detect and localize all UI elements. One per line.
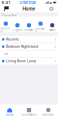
staticText: Lights [13,28,22,32]
button[interactable]: Automation [19,108,39,116]
staticText: 9:41 [2,0,11,5]
staticText: Favorites [2,14,17,17]
button[interactable]: Recents [0,36,58,43]
staticText: Shortcuts [19,0,36,5]
staticText: Security [0,27,11,33]
button[interactable]: · [0,50,58,57]
staticText: Recents [6,37,19,41]
button[interactable]: Speakers [35,22,46,33]
staticText: Climate [24,28,34,32]
staticText: Water [49,28,56,32]
button[interactable]: Climate [23,23,35,32]
staticText: Living Room Lamp [6,59,36,63]
button[interactable]: Water [46,23,58,32]
staticText: Home [6,113,14,116]
button[interactable]: Bedroom Nightstand [0,43,58,50]
button[interactable]: Discover [39,108,58,116]
button[interactable]: Living Room Lamp [0,58,58,64]
button[interactable]: Settings [45,5,58,13]
staticText: Speakers [35,27,46,33]
button[interactable]: Security [0,22,12,33]
staticText: Bedroom Nightstand [6,45,38,48]
staticText: · [2,52,3,56]
staticText: Discover [42,113,54,116]
button[interactable]: Home [0,108,19,116]
staticText: Home [22,6,35,12]
button[interactable]: Flagged [0,5,13,13]
button[interactable]: Lights [12,23,23,32]
staticText: Automation [21,113,37,116]
